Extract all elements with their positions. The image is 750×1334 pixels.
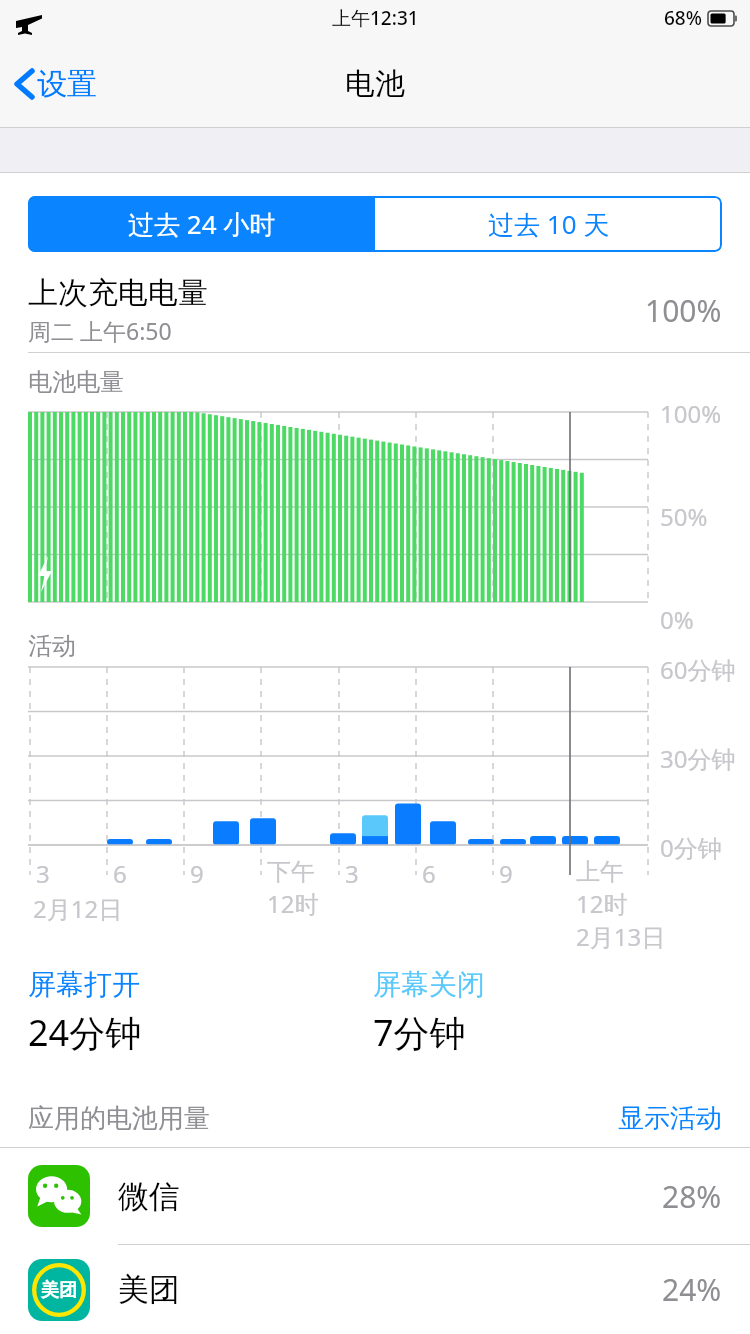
staticText: 7分钟 bbox=[373, 1008, 466, 1057]
button[interactable]: 美团 bbox=[0, 1245, 750, 1334]
button[interactable]: 设置 bbox=[0, 59, 109, 109]
staticText: 68% bbox=[664, 5, 702, 31]
staticText: 12时 bbox=[576, 887, 628, 920]
staticText: 50% bbox=[660, 500, 708, 533]
button[interactable]: 过去 24 小时 bbox=[28, 196, 375, 252]
staticText: 设置 bbox=[37, 65, 97, 103]
staticText: 下午 bbox=[267, 857, 315, 887]
staticText: 30分钟 bbox=[660, 742, 736, 775]
staticText: 2月13日 bbox=[576, 920, 666, 953]
staticText: 电池 bbox=[345, 65, 405, 103]
staticText: 美团 bbox=[118, 1270, 662, 1309]
button[interactable]: 屏幕关闭 bbox=[373, 967, 485, 1002]
staticText: 上午12:31 bbox=[332, 5, 419, 31]
staticText: 周二 上午6:50 bbox=[28, 315, 172, 346]
staticText: 60分钟 bbox=[660, 653, 736, 686]
staticText: 应用的电池用量 bbox=[28, 1102, 618, 1135]
staticText: 微信 bbox=[118, 1177, 662, 1216]
staticText: 24% bbox=[662, 1269, 722, 1310]
staticText: 0% bbox=[660, 603, 694, 635]
staticText: 上次充电电量 bbox=[28, 274, 208, 312]
button[interactable]: 屏幕打开 bbox=[28, 967, 140, 1002]
staticText: 24分钟 bbox=[28, 1008, 142, 1057]
staticText: 6 bbox=[422, 857, 436, 890]
staticText: 9 bbox=[190, 857, 204, 890]
staticText: 3 bbox=[36, 857, 50, 890]
staticText: 上午 bbox=[576, 857, 624, 887]
staticText: 100% bbox=[660, 397, 722, 430]
staticText: 美团 bbox=[41, 1279, 77, 1302]
staticText: 6 bbox=[113, 857, 127, 890]
button[interactable]: 微信 bbox=[0, 1148, 750, 1244]
staticText: 过去 24 小时 bbox=[128, 206, 276, 242]
staticText: 9 bbox=[499, 857, 513, 890]
button[interactable]: 显示活动 bbox=[618, 1102, 722, 1135]
staticText: 28% bbox=[662, 1176, 722, 1217]
staticText: 3 bbox=[345, 857, 359, 890]
staticText: 100% bbox=[645, 290, 722, 331]
staticText: 电池电量 bbox=[28, 367, 124, 397]
staticText: 12时 bbox=[267, 887, 319, 920]
staticText: 活动 bbox=[28, 631, 76, 661]
button[interactable]: 过去 10 天 bbox=[375, 196, 722, 252]
staticText: 过去 10 天 bbox=[488, 206, 610, 242]
staticText: 2月12日 bbox=[33, 892, 123, 925]
staticText: 0分钟 bbox=[660, 831, 722, 864]
